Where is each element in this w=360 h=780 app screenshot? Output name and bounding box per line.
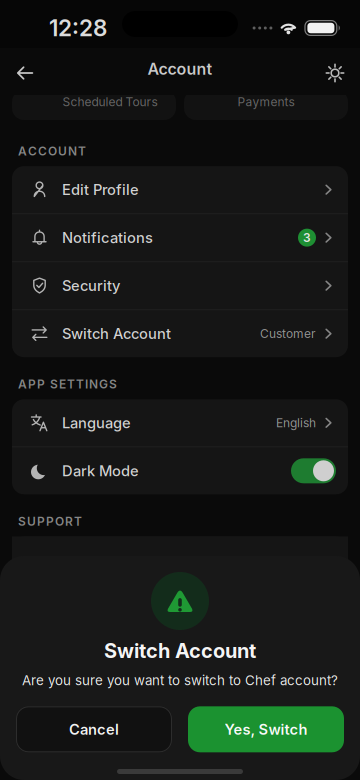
staticText: A C C O U N T xyxy=(18,144,86,158)
staticText: English xyxy=(276,416,316,430)
staticText: Scheduled Tours xyxy=(62,95,157,109)
staticText: Security xyxy=(62,277,120,294)
staticText: Yes, Switch xyxy=(224,721,307,738)
button[interactable]: Language xyxy=(12,399,348,446)
staticText: Are you sure you want to switch to Chef … xyxy=(22,673,338,688)
staticText: Payments xyxy=(237,95,294,109)
button[interactable]: Notifications xyxy=(12,214,348,261)
button[interactable]: Scheduled Tours xyxy=(12,90,176,120)
button[interactable]: Dark Mode xyxy=(12,447,348,494)
button[interactable]: Back xyxy=(0,48,34,90)
button[interactable]: Payments xyxy=(184,90,348,120)
staticText: A P P S E T T I N G S xyxy=(18,377,117,391)
staticText: Language xyxy=(62,414,131,431)
button[interactable]: Light Mode xyxy=(325,48,360,90)
staticText: Notifications xyxy=(62,229,153,246)
button[interactable]: Switch Account xyxy=(12,310,348,357)
staticText: Customer xyxy=(260,327,316,341)
button[interactable]: Cancel xyxy=(16,706,172,752)
staticText: Dark Mode xyxy=(62,462,139,479)
staticText: Cancel xyxy=(69,721,119,738)
button[interactable]: Security xyxy=(12,262,348,309)
staticText: S U P P O R T xyxy=(18,514,82,528)
button[interactable]: Dark Mode xyxy=(291,458,336,483)
staticText: 12:28 xyxy=(49,15,107,41)
button[interactable]: Edit Profile xyxy=(12,166,348,213)
staticText: Switch Account xyxy=(104,639,256,663)
staticText: Edit Profile xyxy=(62,181,139,198)
staticText: Switch Account xyxy=(62,325,171,342)
button[interactable]: Yes, Switch xyxy=(188,706,344,752)
staticText: Account xyxy=(147,60,212,78)
staticText: 3 xyxy=(303,231,311,245)
